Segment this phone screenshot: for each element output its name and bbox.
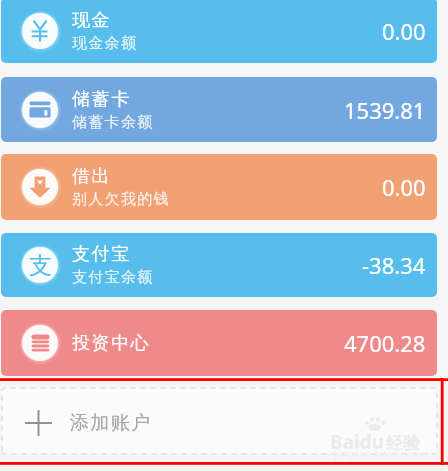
staticText: 投资中心 (72, 332, 151, 355)
staticText: 支 (29, 251, 52, 280)
other: Investments (30, 333, 51, 353)
staticText: 1539.81 (344, 95, 426, 125)
other: Bank card (29, 99, 51, 121)
staticText: 0.00 (382, 16, 426, 46)
staticText: 储蓄卡 (72, 88, 131, 111)
staticText: -38.34 (362, 250, 426, 280)
staticText: 0.00 (382, 172, 426, 202)
other: Cash (28, 19, 52, 43)
staticText: 4700.28 (344, 328, 426, 358)
staticText: Baidu (330, 429, 385, 455)
button[interactable]: 添加账户 (2, 388, 437, 454)
staticText: 别人欠我的钱 (72, 190, 170, 209)
staticText: 现金 (72, 9, 112, 32)
staticText: 借出 (72, 165, 112, 188)
button[interactable]: Cash (1, 0, 437, 63)
other: Lent out (29, 176, 51, 198)
button[interactable]: Bank card (1, 77, 437, 142)
staticText: 经验 (386, 433, 420, 454)
staticText: 支付宝余额 (72, 268, 154, 287)
staticText: jingyan.baidu.com (334, 446, 430, 461)
staticText: 储蓄卡余额 (72, 113, 154, 132)
button[interactable]: Lent out (1, 154, 437, 220)
staticText: 支付宝 (72, 243, 131, 266)
staticText: 添加账户 (69, 411, 151, 435)
button[interactable]: 支 (1, 233, 437, 297)
staticText: 现金余额 (72, 34, 138, 53)
button[interactable]: Investments (1, 310, 437, 376)
